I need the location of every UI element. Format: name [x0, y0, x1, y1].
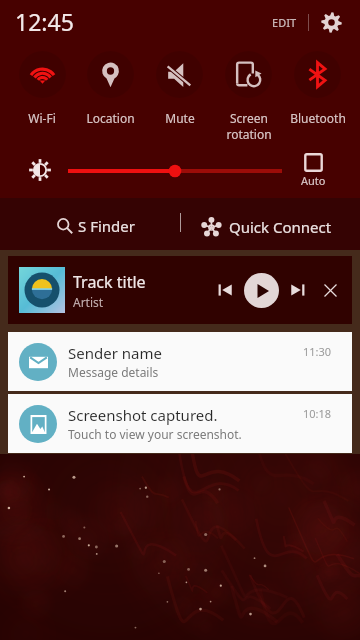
button[interactable]: Mute — [145, 44, 214, 146]
staticText: Bluetooth — [290, 110, 346, 126]
staticText: Track title — [73, 271, 146, 293]
staticText: S Finder — [78, 216, 135, 236]
button[interactable]: EDIT — [266, 7, 303, 38]
staticText: 11:30 — [303, 344, 332, 359]
staticText: Sender name — [68, 343, 162, 363]
staticText: Mute — [165, 110, 195, 126]
staticText: 10:18 — [303, 406, 332, 421]
staticText: Location — [86, 110, 135, 126]
button[interactable]: Location — [76, 44, 145, 146]
button[interactable]: Screenshot captured. — [8, 394, 352, 453]
button[interactable]: Quick Connect — [184, 206, 348, 248]
button[interactable]: Close — [316, 276, 344, 304]
button[interactable]: Next — [284, 276, 312, 304]
button[interactable]: Sender name — [8, 332, 352, 391]
button[interactable]: Previous — [211, 276, 239, 304]
staticText: Touch to view your screenshot. — [68, 426, 242, 442]
staticText: Screen rotation — [226, 110, 272, 143]
staticText: Auto — [301, 173, 326, 188]
button[interactable]: Settings — [314, 5, 348, 39]
button[interactable]: S Finder — [41, 206, 151, 246]
button[interactable]: Track title — [8, 256, 352, 324]
button[interactable]: Bluetooth — [283, 44, 352, 146]
button[interactable]: Play — [244, 273, 279, 308]
staticText: Message details — [68, 364, 159, 380]
button[interactable]: Auto — [295, 151, 332, 190]
staticText: Quick Connect — [229, 217, 332, 237]
staticText: 12:45 — [15, 6, 74, 37]
staticText: Screenshot captured. — [68, 405, 218, 425]
staticText: Artist — [73, 294, 104, 310]
staticText: Wi-Fi — [28, 110, 56, 126]
button[interactable]: Wi-Fi — [8, 44, 76, 146]
button[interactable]: Screen rotation — [214, 44, 283, 146]
